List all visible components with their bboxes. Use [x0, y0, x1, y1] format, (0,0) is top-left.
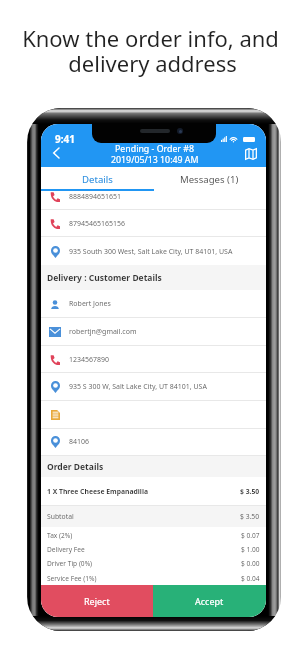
button[interactable]: Driver Tip (0%) — [41, 556, 266, 570]
staticText: 87945465165156 — [69, 219, 126, 229]
staticText: Tax (2%) — [47, 531, 73, 540]
staticText: $ 1.00 — [241, 545, 260, 554]
button[interactable]: Tax (2%) — [41, 528, 266, 542]
staticText: 935 S 300 W, Salt Lake City, UT 84101, U… — [69, 382, 207, 392]
button[interactable]: Subtotal — [41, 506, 266, 527]
staticText: $ 3.50 — [240, 512, 260, 521]
staticText: 84106 — [69, 437, 90, 447]
staticText: 2019/05/13 10:49 AM — [111, 154, 199, 166]
staticText: Subtotal — [47, 512, 74, 521]
button[interactable]: 1234567890 — [41, 346, 266, 373]
staticText: Know the order info, and — [22, 23, 279, 53]
button[interactable]: 935 South 300 West, Salt Lake City, UT 8… — [41, 238, 266, 266]
staticText: Reject — [84, 595, 110, 607]
button[interactable]: Back — [45, 142, 67, 164]
staticText: Delivery : Customer Details — [47, 272, 162, 284]
staticText: $ 3.50 — [240, 487, 260, 496]
button[interactable]: Details — [41, 167, 153, 191]
staticText: 1 X Three Cheese Empanadilla — [47, 487, 148, 496]
staticText: Delivery Fee — [47, 545, 85, 554]
button[interactable]: 1 X Three Cheese Empanadilla — [41, 477, 266, 506]
staticText: 9:41 — [55, 132, 75, 146]
staticText: Details — [82, 173, 113, 186]
staticText: 1234567890 — [69, 355, 110, 365]
button[interactable]: Delivery Fee — [41, 542, 266, 556]
button[interactable]: Accept — [153, 585, 266, 617]
staticText: Order Details — [47, 461, 104, 473]
button[interactable] — [41, 401, 266, 429]
staticText: Robert Jones — [69, 299, 111, 309]
staticText: Accept — [195, 595, 224, 607]
staticText: 935 South 300 West, Salt Lake City, UT 8… — [69, 247, 233, 257]
staticText: $ 0.00 — [241, 559, 260, 568]
staticText: Messages (1) — [180, 173, 239, 186]
staticText: Driver Tip (0%) — [47, 559, 93, 568]
staticText: $ 0.04 — [241, 574, 260, 583]
button[interactable]: 84106 — [41, 428, 266, 456]
button[interactable]: 8884894651651 — [41, 183, 266, 210]
staticText: 8884894651651 — [69, 192, 122, 202]
button[interactable]: Map — [240, 143, 262, 165]
staticText: Service Fee (1%) — [47, 574, 97, 583]
staticText: robertjn@gmail.com — [69, 327, 137, 337]
button[interactable]: 87945465165156 — [41, 210, 266, 237]
button[interactable]: Reject — [41, 585, 153, 617]
button[interactable]: 935 S 300 W, Salt Lake City, UT 84101, U… — [41, 373, 266, 401]
staticText: delivery address — [68, 48, 237, 78]
staticText: Pending - Order #8 — [115, 143, 194, 155]
button[interactable]: Service Fee (1%) — [41, 571, 266, 585]
button[interactable]: robertjn@gmail.com — [41, 318, 266, 346]
button[interactable]: Messages (1) — [153, 167, 266, 191]
button[interactable]: Robert Jones — [41, 290, 266, 318]
staticText: $ 0.07 — [241, 531, 260, 540]
